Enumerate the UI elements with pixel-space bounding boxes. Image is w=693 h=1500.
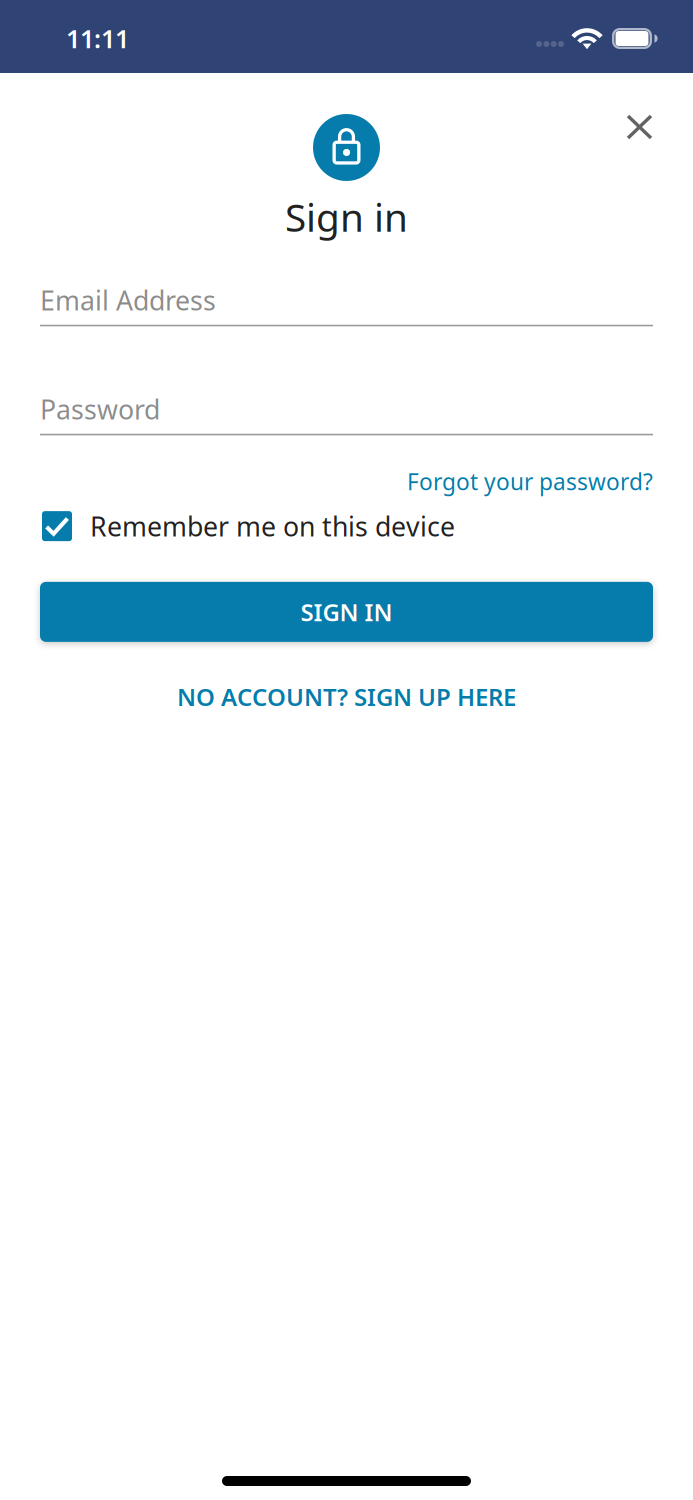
staticText: Remember me on this device <box>90 508 455 544</box>
staticText: SIGN IN <box>300 596 392 628</box>
staticText: NO ACCOUNT? SIGN UP HERE <box>177 681 516 713</box>
button[interactable]: SIGN IN <box>40 582 653 642</box>
button[interactable]: Remember me on this device <box>40 508 455 544</box>
staticText: Sign in <box>285 191 408 242</box>
staticText: Forgot your password? <box>407 466 653 496</box>
button[interactable]: Close <box>608 96 693 158</box>
staticText: 11:11 <box>66 22 129 55</box>
staticText: Password <box>40 391 160 427</box>
button[interactable]: Forgot your password? <box>407 466 653 496</box>
button[interactable]: NO ACCOUNT? SIGN UP HERE <box>40 669 653 725</box>
staticText: Email Address <box>40 282 216 318</box>
